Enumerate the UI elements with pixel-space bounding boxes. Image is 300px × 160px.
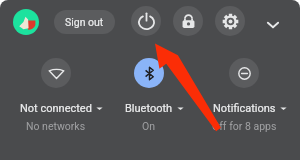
staticText: Notifications [213, 102, 276, 115]
button[interactable]: Sign out [54, 10, 115, 34]
button[interactable]: Notifications [229, 58, 259, 88]
button[interactable]: Account [13, 9, 39, 35]
button[interactable]: Settings [215, 6, 245, 36]
button[interactable]: Not connected [41, 58, 71, 88]
button[interactable]: Power [131, 6, 161, 36]
staticText: Bluetooth [125, 102, 173, 115]
staticText: Off for 8 apps [212, 120, 277, 132]
button[interactable]: Lock [173, 6, 203, 36]
staticText: No networks [26, 120, 86, 132]
staticText: Not connected [20, 102, 92, 115]
button[interactable]: Bluetooth [134, 58, 164, 88]
staticText: Sign out [65, 16, 104, 28]
staticText: On [142, 120, 156, 132]
button[interactable]: Collapse [259, 10, 287, 38]
